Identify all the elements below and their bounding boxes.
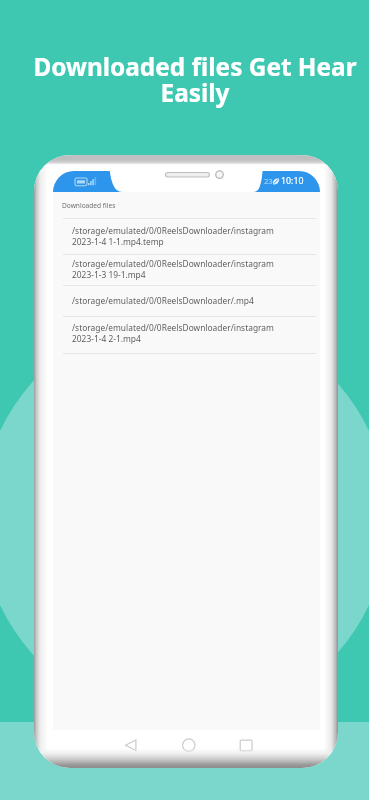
staticText: Downloaded files Get Hear Easily	[23, 50, 367, 110]
staticText: /storage/emulated/0/0ReelsDownloader/ins…	[72, 225, 274, 236]
button[interactable]: Home	[177, 734, 201, 757]
button[interactable]: Recents	[233, 734, 257, 757]
staticText: 10:10	[281, 175, 304, 187]
staticText: Downloaded files	[62, 201, 116, 210]
staticText: 2023-1-4 1-1.mp4.temp	[72, 236, 164, 247]
staticText: /storage/emulated/0/0ReelsDownloader/.mp…	[72, 295, 254, 306]
staticText: 2023-1-3 19-1.mp4	[72, 269, 146, 280]
staticText: /storage/emulated/0/0ReelsDownloader/ins…	[72, 322, 274, 333]
staticText: /storage/emulated/0/0ReelsDownloader/ins…	[72, 258, 274, 269]
button[interactable]: /storage/emulated/0/0ReelsDownloader/.mp…	[53, 285, 320, 316]
staticText: 2023-1-4 2-1.mp4	[72, 333, 141, 344]
button[interactable]: Back	[118, 734, 142, 757]
staticText: 23	[264, 176, 273, 186]
button[interactable]: /storage/emulated/0/0ReelsDownloader/ins…	[53, 254, 320, 285]
button[interactable]: /storage/emulated/0/0ReelsDownloader/ins…	[53, 218, 320, 254]
button[interactable]: /storage/emulated/0/0ReelsDownloader/ins…	[53, 316, 320, 353]
